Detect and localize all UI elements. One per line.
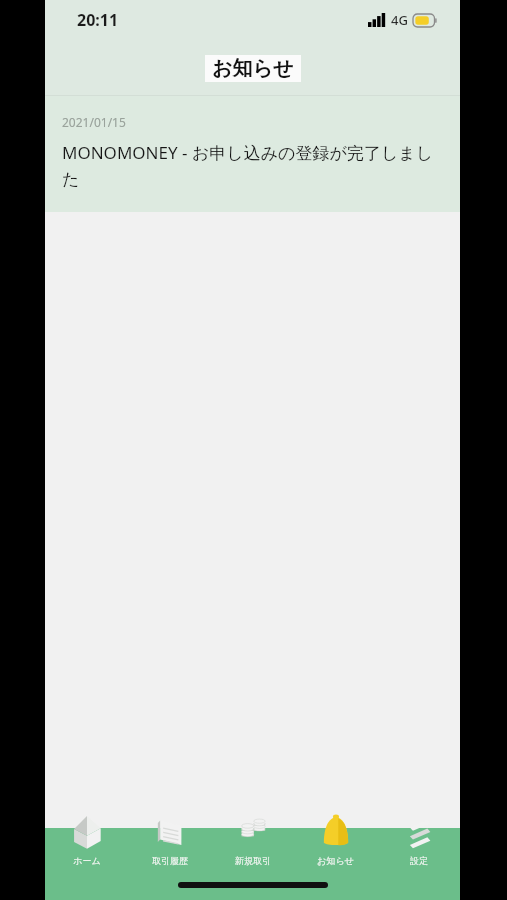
staticText: 4G <box>391 11 408 29</box>
staticText: 2021/01/15 <box>62 114 126 130</box>
button[interactable]: ホーム <box>45 810 128 876</box>
staticText: お知らせ <box>212 56 294 81</box>
other: 設定 <box>400 813 438 851</box>
button[interactable]: 新規取引 <box>211 810 294 876</box>
button[interactable]: 取引履歴 <box>128 810 211 876</box>
staticText: 設定 <box>410 855 428 866</box>
staticText: お知らせ <box>317 855 354 866</box>
staticText: 取引履歴 <box>152 855 188 866</box>
staticText: MONOMONEY - お申し込みの登録が完了しました <box>62 141 443 190</box>
other: ホーム <box>68 813 106 851</box>
staticText: 新規取引 <box>235 855 271 866</box>
other: 取引履歴 <box>151 813 189 851</box>
button[interactable]: お知らせ <box>294 810 377 876</box>
other: お知らせ <box>317 813 355 851</box>
button[interactable]: 2021/01/15 <box>45 96 460 212</box>
staticText: ホーム <box>73 855 101 866</box>
staticText: 20:11 <box>77 9 119 31</box>
button[interactable]: 設定 <box>377 810 460 876</box>
other: 新規取引 <box>234 813 272 851</box>
